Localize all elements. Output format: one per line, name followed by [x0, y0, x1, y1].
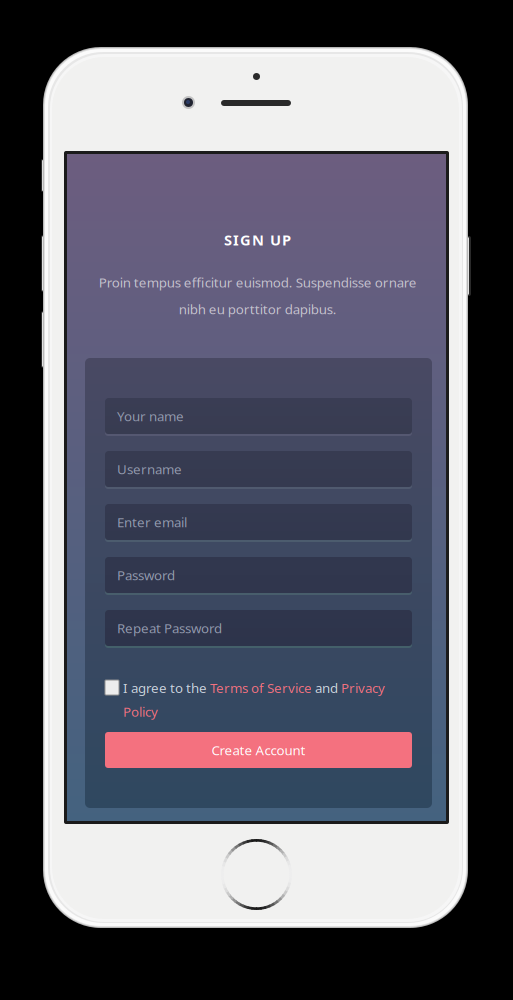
button[interactable]: Create Account [105, 732, 412, 768]
staticText: Your name [117, 407, 184, 425]
button[interactable]: Username [105, 451, 412, 489]
staticText: Repeat Password [117, 619, 222, 637]
button[interactable]: Password [105, 557, 412, 595]
button[interactable]: Enter email [105, 504, 412, 542]
staticText: Create Account [211, 741, 305, 759]
button[interactable]: Agree to terms [105, 679, 119, 694]
staticText: Enter email [117, 513, 187, 531]
staticText: Password [117, 566, 175, 584]
button[interactable]: Your name [105, 398, 412, 436]
staticText: Username [117, 460, 182, 478]
staticText: Proin tempus efficitur euismod. Suspendi… [98, 273, 416, 318]
button[interactable]: I agree to the Terms of Service and Priv… [123, 679, 388, 720]
staticText: SIGN UP [224, 230, 291, 249]
button[interactable]: Repeat Password [105, 610, 412, 648]
staticText: I agree to the Terms of Service and Priv… [123, 679, 385, 720]
